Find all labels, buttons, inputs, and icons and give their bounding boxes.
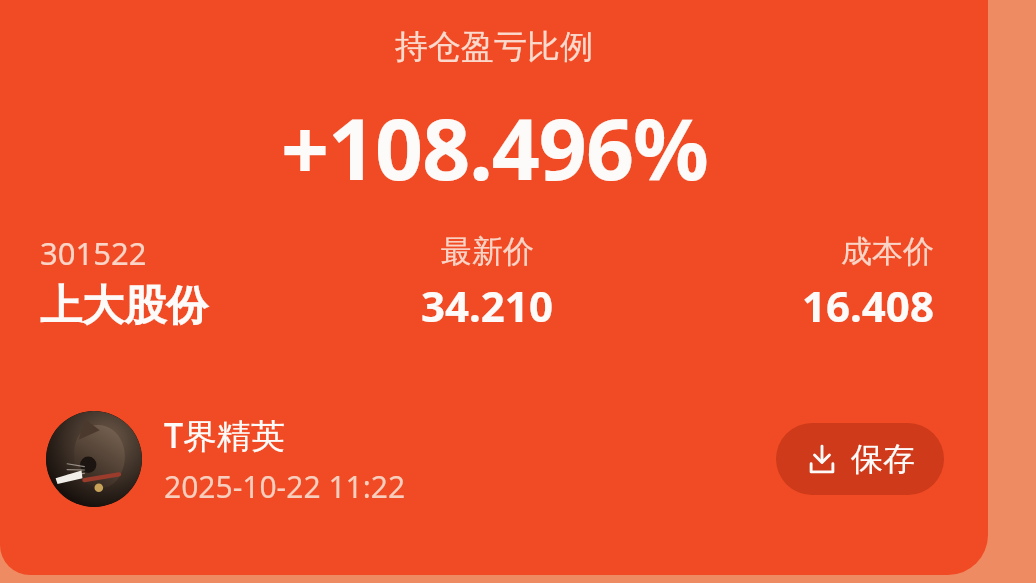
staticText: +108.496% <box>281 90 708 204</box>
staticText: T界精英 <box>164 412 286 458</box>
staticText: 301522 <box>40 232 147 274</box>
button[interactable]: Save <box>776 423 944 495</box>
button[interactable]: User avatar <box>46 411 142 507</box>
staticText: 上大股份 <box>40 280 208 333</box>
staticText: 最新价 <box>441 232 534 271</box>
staticText: 持仓盈亏比例 <box>395 26 593 68</box>
staticText: 成本价 <box>841 232 934 271</box>
staticText: 34.210 <box>421 277 553 334</box>
staticText: 2025-10-22 11:22 <box>164 466 406 507</box>
staticText: 保存 <box>851 439 915 479</box>
staticText: 16.408 <box>802 277 934 334</box>
